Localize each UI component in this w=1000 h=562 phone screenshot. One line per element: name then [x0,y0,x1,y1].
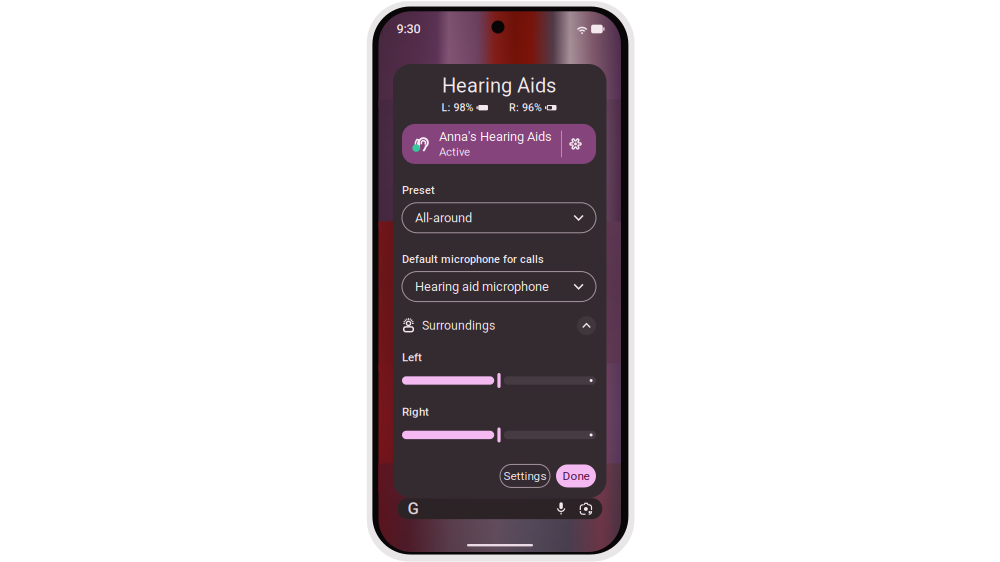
staticText: L: 98% [441,101,473,114]
staticText: Hearing aid microphone [415,279,549,294]
staticText: Settings [503,469,546,483]
button[interactable]: Done [556,464,596,487]
button[interactable]: Anna's Hearing Aids [402,124,596,164]
staticText: Surroundings [422,318,495,333]
staticText: G [407,499,418,518]
staticText: Done [562,469,589,483]
button[interactable]: Hearing aid microphone [402,272,596,302]
staticText: Right [402,405,429,418]
staticText: R: 96% [509,101,542,114]
staticText: All-around [415,210,472,225]
button[interactable]: Surroundings [402,316,596,336]
button[interactable]: All-around [402,203,596,233]
staticText: Left [402,351,422,364]
staticText: 9:30 [396,22,420,36]
button[interactable]: Search with Google [397,498,602,519]
staticText: Hearing Aids [442,74,556,97]
staticText: Anna's Hearing Aids [439,129,552,144]
staticText: Preset [402,184,435,197]
staticText: Active [439,145,470,159]
staticText: Default microphone for calls [402,253,544,266]
button[interactable]: Settings [500,464,550,487]
